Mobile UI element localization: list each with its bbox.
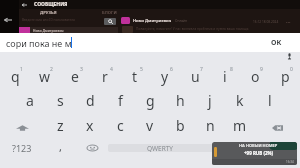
staticText: d — [86, 91, 95, 110]
staticText: Введите имя или ID пользователя — [22, 18, 75, 22]
staticText: f — [118, 91, 123, 110]
staticText: Онлайн — [175, 19, 187, 23]
staticText: +99 RUB (2%) — [244, 150, 274, 156]
button[interactable]: l — [255, 90, 285, 115]
staticText: 1 — [20, 66, 23, 73]
button[interactable]: v — [135, 115, 165, 140]
staticText: q — [11, 67, 20, 86]
staticText: СООБЩЕНИЯ — [34, 1, 68, 8]
staticText: a — [26, 91, 34, 110]
staticText: ОК — [271, 38, 282, 48]
button[interactable]: Back — [4, 18, 12, 22]
staticText: 9 — [260, 66, 263, 73]
staticText: e — [71, 67, 79, 86]
staticText: ••• — [286, 20, 291, 25]
staticText: c — [117, 116, 124, 135]
staticText: v — [146, 116, 154, 135]
staticText: сори пока не м — [6, 37, 72, 49]
button[interactable]: Back — [22, 3, 27, 7]
staticText: 6 — [170, 66, 173, 73]
staticText: 8 — [230, 66, 233, 73]
button[interactable]: z — [45, 115, 75, 140]
staticText: w — [39, 67, 51, 86]
button[interactable]: QWERTY — [108, 144, 213, 152]
staticText: b — [176, 116, 185, 135]
button[interactable]: m — [225, 115, 255, 140]
button[interactable]: ОК — [271, 38, 282, 48]
staticText: m — [233, 116, 247, 135]
staticText: x — [86, 116, 94, 135]
button[interactable]: 5 — [120, 66, 150, 90]
staticText: 16:12 18.08.2024 — [253, 20, 279, 24]
staticText: БЛОГИ — [102, 10, 117, 16]
button[interactable]: Search — [104, 18, 116, 25]
button[interactable]: ДРУЗЬЯ — [33, 10, 64, 16]
button[interactable]: НА НОВЫЙ НОМЕР — [212, 142, 297, 165]
staticText: Ники Дмитриевич — [133, 18, 172, 23]
staticText: i — [223, 67, 227, 86]
staticText: QWERTY — [147, 144, 174, 152]
staticText: Пожалуйста, помогите! У нас возникла про… — [136, 27, 249, 31]
button[interactable]: More options — [283, 19, 293, 25]
button[interactable]: f — [105, 90, 135, 115]
button[interactable]: 7 — [180, 66, 210, 90]
staticText: y — [161, 67, 169, 86]
button[interactable]: n — [195, 115, 225, 140]
button[interactable]: 3 — [60, 66, 90, 90]
staticText: l — [268, 91, 272, 110]
button[interactable]: Backspace — [255, 115, 300, 140]
staticText: Ники Дмитриевич — [33, 29, 64, 33]
button[interactable]: a — [15, 90, 45, 115]
staticText: , — [59, 139, 62, 154]
staticText: 3 — [80, 66, 83, 73]
staticText: ДРУЗЬЯ — [40, 10, 57, 16]
button[interactable]: Shift — [0, 115, 45, 140]
button[interactable]: БЛОГИ — [95, 10, 124, 16]
button[interactable]: d — [75, 90, 105, 115]
button[interactable]: Emoji — [76, 140, 108, 156]
staticText: o — [251, 67, 260, 86]
staticText: r — [102, 67, 108, 86]
staticText: n — [206, 116, 215, 135]
staticText: ?123 — [12, 142, 32, 154]
staticText: 4 — [110, 66, 113, 73]
staticText: u — [191, 67, 200, 86]
staticText: k — [236, 91, 244, 110]
button[interactable]: 0 — [270, 66, 300, 90]
button[interactable]: k — [225, 90, 255, 115]
staticText: s — [57, 91, 64, 110]
button[interactable]: 6 — [150, 66, 180, 90]
staticText: z — [57, 116, 64, 135]
button[interactable]: 1 — [0, 66, 30, 90]
staticText: 0 — [290, 66, 293, 73]
button[interactable]: , — [44, 140, 76, 156]
staticText: 5 — [140, 66, 143, 73]
staticText: 16:34 — [286, 160, 294, 164]
button[interactable]: j — [195, 90, 225, 115]
staticText: g — [146, 91, 155, 110]
button[interactable]: Ники Дмитриевич — [19, 27, 118, 34]
button[interactable]: 9 — [240, 66, 270, 90]
button[interactable]: g — [135, 90, 165, 115]
button[interactable]: c — [105, 115, 135, 140]
staticText: t — [132, 67, 138, 86]
button[interactable]: 4 — [90, 66, 120, 90]
staticText: p — [281, 67, 290, 86]
button[interactable]: h — [165, 90, 195, 115]
button[interactable]: 8 — [210, 66, 240, 90]
button[interactable]: ?123 — [0, 140, 44, 156]
staticText: 7 — [200, 66, 203, 73]
button[interactable]: s — [45, 90, 75, 115]
staticText: НА НОВЫЙ НОМЕР — [239, 143, 278, 148]
staticText: 2 — [50, 66, 53, 73]
button[interactable]: 2 — [30, 66, 60, 90]
staticText: h — [176, 91, 185, 110]
staticText: j — [208, 91, 212, 110]
button[interactable]: Voice input — [286, 53, 293, 60]
button[interactable]: x — [75, 115, 105, 140]
button[interactable]: b — [165, 115, 195, 140]
